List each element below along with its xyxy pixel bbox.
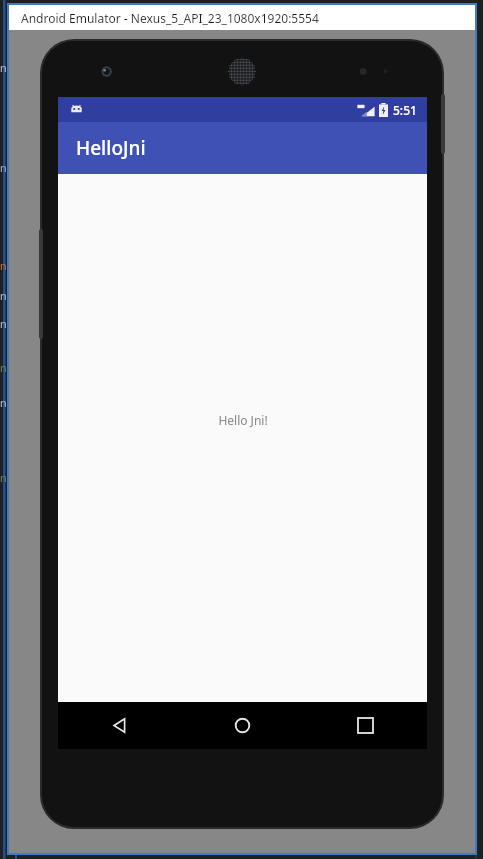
staticText: n — [0, 258, 7, 273]
staticText: n — [0, 395, 7, 410]
staticText: n — [0, 288, 7, 303]
staticText: n — [0, 160, 7, 175]
button[interactable]: Home — [181, 702, 304, 749]
staticText: Android Emulator - Nexus_5_API_23_1080x1… — [21, 10, 319, 26]
staticText: 5:51 — [393, 102, 417, 118]
staticText: n — [0, 316, 7, 331]
staticText: n — [0, 470, 7, 485]
staticText: m — [470, 330, 477, 345]
staticText: n — [0, 360, 7, 375]
button[interactable]: Android Emulator - Nexus_5_API_23_1080x1… — [9, 5, 475, 30]
staticText: Hello Jni! — [218, 412, 268, 428]
other: Notification — [70, 103, 83, 116]
button[interactable]: HelloJni — [58, 122, 427, 174]
button[interactable]: Recent apps — [304, 702, 427, 749]
staticText: HelloJni — [76, 135, 146, 161]
staticText: n — [0, 60, 7, 75]
button[interactable]: Back — [58, 702, 181, 749]
